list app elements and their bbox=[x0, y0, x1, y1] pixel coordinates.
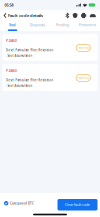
staticText: 05:58 bbox=[4, 2, 13, 8]
staticText: Fault code details bbox=[8, 13, 43, 18]
staticText: - Soot Accumulation bbox=[5, 54, 32, 57]
button[interactable]: P2463 bbox=[2, 34, 97, 61]
button[interactable]: Category of DTC bbox=[0, 197, 34, 208]
staticText: Total bbox=[9, 23, 16, 27]
button[interactable]: Fault code details bbox=[0, 10, 46, 21]
button[interactable]: Pending bbox=[50, 21, 75, 31]
staticText: Pending bbox=[56, 23, 69, 27]
button[interactable]: Total bbox=[0, 21, 25, 31]
button[interactable]: Bluetooth bbox=[65, 13, 69, 18]
button[interactable]: P2463 bbox=[2, 64, 97, 91]
staticText: P2463 bbox=[5, 37, 16, 43]
staticText: Diesel Particulate Filter Restriction bbox=[5, 78, 53, 82]
button[interactable]: Clear fault code bbox=[57, 194, 97, 210]
button[interactable]: Diagnostic bbox=[25, 21, 50, 31]
button[interactable]: Permanent bbox=[75, 21, 100, 31]
staticText: Pending bbox=[77, 76, 89, 80]
staticText: Pending bbox=[77, 46, 89, 50]
button[interactable]: Print bbox=[81, 13, 86, 18]
button[interactable]: Protection bbox=[73, 13, 78, 18]
staticText: Diesel Particulate Filter Restriction bbox=[5, 48, 53, 52]
staticText: Clear fault code bbox=[65, 202, 90, 207]
staticText: - Soot Accumulation bbox=[5, 84, 32, 87]
staticText: P2463 bbox=[5, 67, 16, 73]
button[interactable]: Vehicle bbox=[90, 13, 96, 18]
staticText: Permanent bbox=[79, 23, 96, 27]
staticText: Category of DTC bbox=[10, 201, 34, 205]
staticText: Diagnostic bbox=[30, 23, 45, 27]
